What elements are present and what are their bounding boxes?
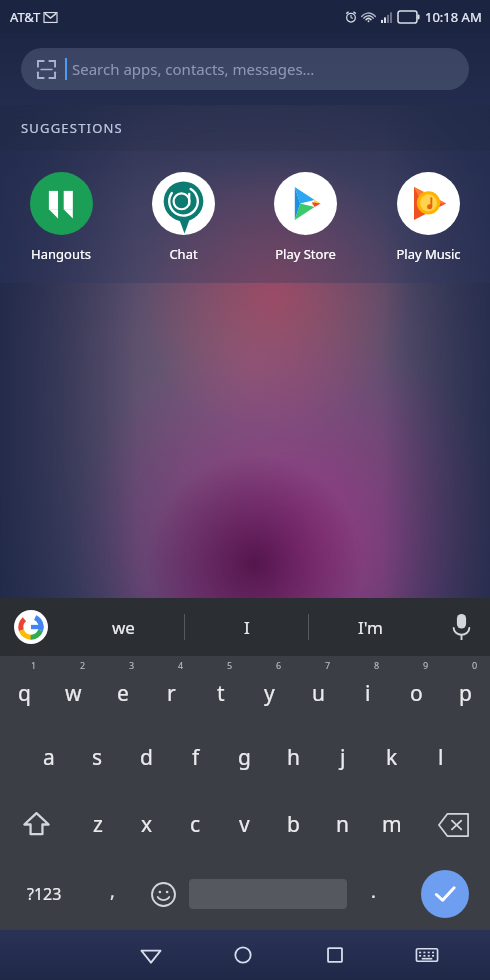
- button[interactable]: Back: [105, 930, 197, 980]
- staticText: s: [92, 743, 103, 772]
- button[interactable]: 6: [245, 656, 294, 723]
- staticText: g: [238, 743, 251, 772]
- button[interactable]: Emoji: [137, 858, 189, 930]
- staticText: ,: [110, 879, 115, 904]
- staticText: f: [192, 743, 200, 772]
- staticText: 9: [423, 659, 429, 671]
- button[interactable]: 0: [441, 656, 490, 723]
- staticText: y: [264, 679, 275, 708]
- staticText: t: [217, 679, 225, 708]
- staticText: n: [336, 810, 349, 839]
- staticText: u: [312, 679, 325, 708]
- button[interactable]: n: [318, 791, 367, 858]
- button[interactable]: Hangouts: [0, 151, 122, 283]
- staticText: we: [112, 616, 135, 639]
- staticText: w: [65, 679, 82, 708]
- staticText: a: [43, 743, 55, 772]
- button[interactable]: j: [318, 723, 367, 791]
- button[interactable]: Home: [197, 930, 289, 980]
- button[interactable]: 8: [343, 656, 392, 723]
- button[interactable]: c: [171, 791, 220, 858]
- button[interactable]: Backspace: [416, 791, 490, 858]
- staticText: 1: [31, 659, 37, 671]
- button[interactable]: g: [220, 723, 269, 791]
- button[interactable]: h: [269, 723, 318, 791]
- staticText: AT&T: [10, 8, 41, 26]
- staticText: c: [190, 810, 201, 839]
- button[interactable]: 7: [294, 656, 343, 723]
- staticText: 5: [227, 659, 233, 671]
- button[interactable]: 9: [392, 656, 441, 723]
- button[interactable]: 2: [49, 656, 98, 723]
- staticText: d: [140, 743, 153, 772]
- button[interactable]: b: [269, 791, 318, 858]
- staticText: i: [365, 679, 371, 708]
- button[interactable]: Recents: [289, 930, 381, 980]
- staticText: 2: [80, 659, 86, 671]
- staticText: 4: [178, 659, 184, 671]
- staticText: l: [438, 743, 444, 772]
- button[interactable]: ,: [88, 858, 137, 930]
- staticText: ?123: [27, 883, 62, 905]
- staticText: m: [382, 810, 402, 839]
- staticText: e: [117, 679, 129, 708]
- button[interactable]: .: [347, 858, 399, 930]
- button[interactable]: Voice input: [432, 598, 490, 656]
- button[interactable]: ?123: [0, 858, 88, 930]
- staticText: h: [287, 743, 300, 772]
- button[interactable]: z: [73, 791, 122, 858]
- button[interactable]: x: [122, 791, 171, 858]
- button[interactable]: I: [185, 598, 308, 656]
- staticText: Search apps, contacts, messages…: [72, 59, 315, 79]
- button[interactable]: Space: [189, 858, 347, 930]
- button[interactable]: 1: [0, 656, 49, 723]
- staticText: Play Store: [275, 245, 336, 263]
- button[interactable]: Play Store: [244, 151, 367, 283]
- button[interactable]: Enter: [421, 870, 469, 918]
- button[interactable]: Play Music: [367, 151, 490, 283]
- button[interactable]: l: [416, 723, 465, 791]
- staticText: v: [239, 810, 250, 839]
- staticText: x: [141, 810, 153, 839]
- button[interactable]: k: [367, 723, 416, 791]
- button[interactable]: f: [171, 723, 220, 791]
- button[interactable]: d: [122, 723, 171, 791]
- staticText: SUGGESTIONS: [21, 119, 123, 137]
- staticText: k: [386, 743, 398, 772]
- staticText: Hangouts: [31, 245, 91, 263]
- button[interactable]: 4: [147, 656, 196, 723]
- staticText: 8: [374, 659, 380, 671]
- staticText: j: [340, 743, 346, 772]
- staticText: r: [167, 679, 176, 708]
- staticText: .: [371, 879, 376, 904]
- button[interactable]: Hide keyboard: [381, 930, 473, 980]
- button[interactable]: 5: [196, 656, 245, 723]
- button[interactable]: I'm: [309, 598, 432, 656]
- button[interactable]: Google: [0, 598, 62, 656]
- staticText: o: [410, 679, 423, 708]
- staticText: I'm: [358, 616, 383, 639]
- staticText: 7: [325, 659, 331, 671]
- button[interactable]: we: [62, 598, 184, 656]
- staticText: 0: [472, 659, 478, 671]
- staticText: q: [18, 679, 31, 708]
- button[interactable]: Shift: [0, 791, 73, 858]
- button[interactable]: v: [220, 791, 269, 858]
- staticText: 6: [276, 659, 282, 671]
- button[interactable]: 3: [98, 656, 147, 723]
- staticText: z: [93, 810, 103, 839]
- other: Lens search: [37, 60, 56, 79]
- button[interactable]: Lens search: [21, 48, 469, 90]
- staticText: 10:18 AM: [425, 8, 482, 26]
- staticText: p: [459, 679, 472, 708]
- staticText: I: [244, 616, 250, 639]
- button[interactable]: Chat: [122, 151, 244, 283]
- staticText: Play Music: [396, 245, 461, 263]
- button[interactable]: s: [73, 723, 122, 791]
- staticText: 3: [129, 659, 135, 671]
- staticText: Chat: [169, 245, 198, 263]
- button[interactable]: m: [367, 791, 416, 858]
- button[interactable]: a: [24, 723, 73, 791]
- staticText: b: [287, 810, 300, 839]
